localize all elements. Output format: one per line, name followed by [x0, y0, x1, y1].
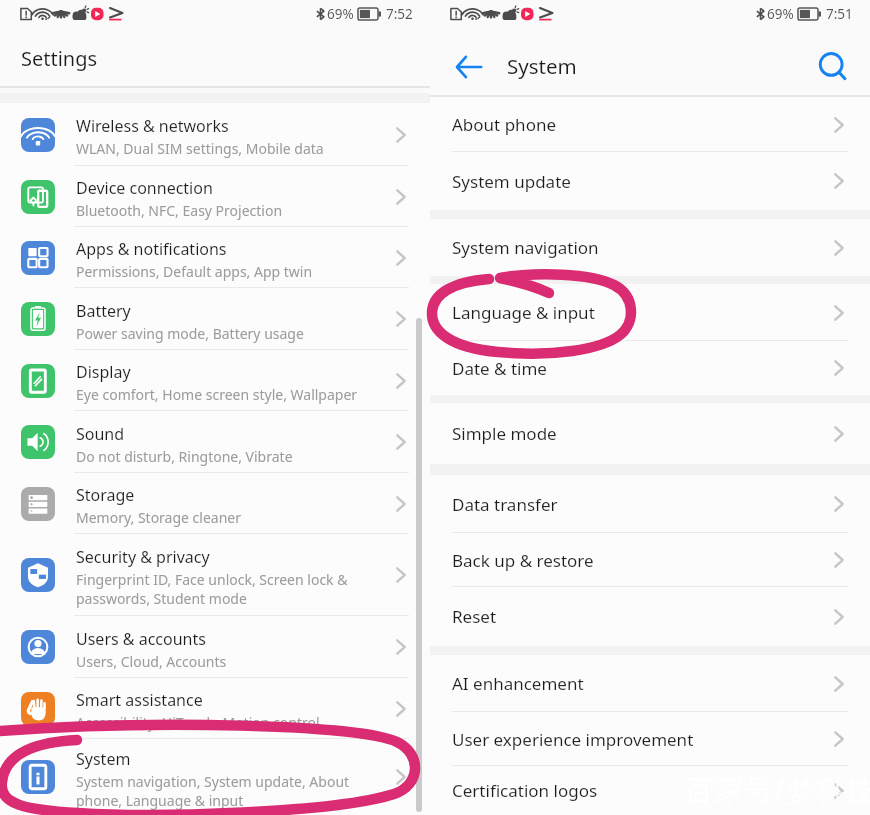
button[interactable]: System [0, 739, 430, 815]
staticText: 7:51 [826, 5, 853, 23]
button[interactable]: Wireless & networks [0, 103, 430, 166]
staticText: Users, Cloud, Accounts [76, 652, 227, 671]
button[interactable]: Apps & notifications [0, 227, 430, 288]
button[interactable]: AI enhancement [430, 655, 870, 712]
staticText: System [507, 52, 577, 80]
staticText: Back up & restore [452, 549, 834, 572]
staticText: AI enhancement [452, 672, 834, 695]
staticText: 百家号/梦科技 [684, 769, 870, 810]
button[interactable]: Language & input [430, 284, 870, 341]
staticText: System navigation, System update, About … [76, 772, 350, 810]
button[interactable]: Reset [430, 587, 870, 646]
button[interactable]: Search [811, 45, 855, 89]
staticText: Bluetooth, NFC, Easy Projection [76, 201, 283, 220]
staticText: Accessibility, HiTouch, Motion control [76, 713, 320, 732]
button[interactable]: Device connection [0, 166, 430, 227]
button[interactable]: Certification logos [430, 766, 870, 815]
staticText: Smart assistance [76, 689, 203, 711]
staticText: System [76, 748, 131, 770]
button[interactable]: Battery [0, 288, 430, 350]
staticText: Apps & notifications [76, 238, 227, 260]
button[interactable]: Date & time [430, 341, 870, 395]
button[interactable]: About phone [430, 97, 870, 152]
staticText: Language & input [452, 301, 834, 324]
button[interactable]: Display [0, 350, 430, 411]
button[interactable]: User experience improvement [430, 712, 870, 766]
staticText: Certification logos [452, 779, 834, 802]
button[interactable]: Users & accounts [0, 616, 430, 678]
staticText: Storage [76, 484, 135, 506]
button[interactable]: System update [430, 152, 870, 210]
button[interactable]: Sound [0, 411, 430, 473]
button[interactable]: Smart assistance [0, 678, 430, 739]
staticText: System navigation [452, 236, 834, 259]
button[interactable]: Simple mode [430, 403, 870, 464]
staticText: 7:52 [386, 5, 413, 23]
staticText: Data transfer [452, 493, 834, 516]
staticText: Permissions, Default apps, App twin [76, 262, 313, 281]
staticText: Fingerprint ID, Face unlock, Screen lock… [76, 570, 348, 608]
staticText: Sound [76, 423, 125, 445]
staticText: 69% [767, 5, 794, 23]
staticText: Settings [21, 45, 98, 72]
staticText: Device connection [76, 177, 213, 199]
staticText: Power saving mode, Battery usage [76, 324, 304, 343]
staticText: User experience improvement [452, 728, 834, 751]
button[interactable]: Data transfer [430, 475, 870, 533]
button[interactable]: Storage [0, 473, 430, 534]
staticText: Memory, Storage cleaner [76, 508, 242, 527]
staticText: WLAN, Dual SIM settings, Mobile data [76, 139, 324, 158]
staticText: Wireless & networks [76, 115, 229, 137]
staticText: Battery [76, 300, 131, 322]
staticText: Do not disturb, Ringtone, Vibrate [76, 447, 293, 466]
staticText: Simple mode [452, 422, 834, 445]
staticText: Display [76, 361, 131, 383]
staticText: Date & time [452, 357, 834, 380]
button[interactable]: Security & privacy [0, 534, 430, 616]
staticText: Eye comfort, Home screen style, Wallpape… [76, 385, 358, 404]
button[interactable]: Back up & restore [430, 533, 870, 587]
button[interactable]: System navigation [430, 219, 870, 276]
staticText: 69% [327, 5, 354, 23]
staticText: Security & privacy [76, 546, 210, 568]
staticText: System update [452, 170, 834, 193]
staticText: About phone [452, 113, 834, 136]
staticText: Reset [452, 605, 834, 628]
staticText: Users & accounts [76, 628, 206, 650]
button[interactable]: Back [447, 45, 491, 89]
